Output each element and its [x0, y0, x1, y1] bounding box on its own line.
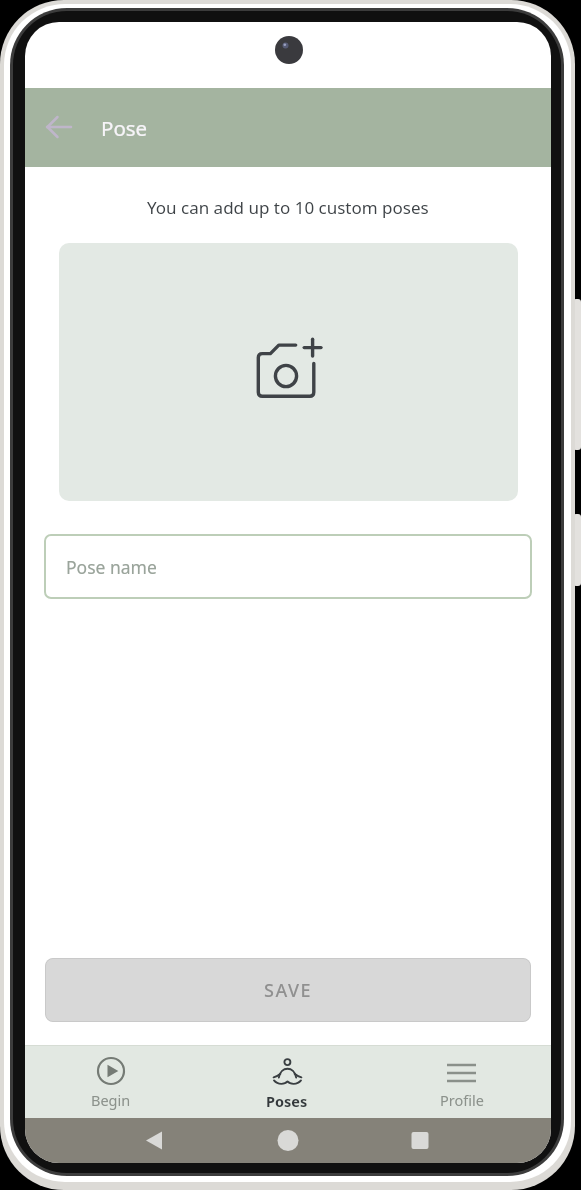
button[interactable]: [35, 103, 83, 151]
button[interactable]: [59, 243, 518, 501]
staticText: Begin: [91, 1090, 131, 1110]
staticText: SAVE: [264, 978, 313, 1003]
staticText: Pose name: [66, 555, 157, 579]
button[interactable]: SAVE: [45, 958, 531, 1022]
button[interactable]: Profile: [412, 1046, 512, 1118]
button[interactable]: Begin: [61, 1046, 161, 1118]
staticText: Pose: [101, 114, 148, 142]
staticText: Poses: [266, 1091, 308, 1111]
staticText: You can add up to 10 custom poses: [147, 196, 429, 219]
staticText: Profile: [440, 1090, 484, 1110]
button[interactable]: Poses: [237, 1046, 337, 1118]
button[interactable]: Pose name: [44, 534, 532, 599]
